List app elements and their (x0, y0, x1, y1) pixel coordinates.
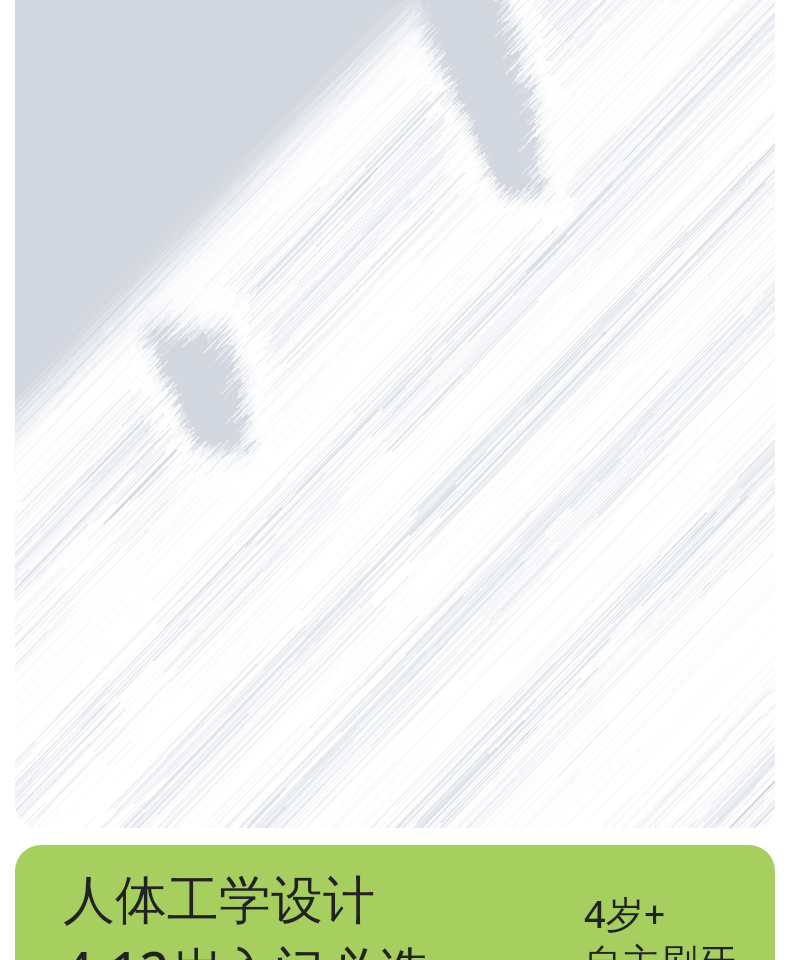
staticText: 4岁+ (584, 887, 666, 939)
staticText: 人体工学设计 (63, 868, 375, 934)
staticText: 自主刷牙 (584, 939, 736, 960)
button[interactable]: 人体工学设计 (15, 845, 775, 960)
staticText: 4-12岁入门必选 (63, 934, 429, 960)
